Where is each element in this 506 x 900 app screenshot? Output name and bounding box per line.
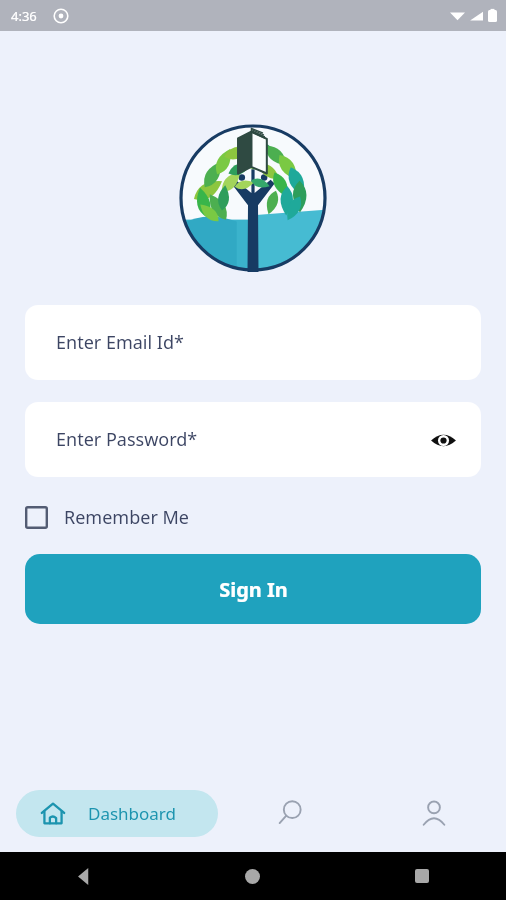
- button[interactable]: Home: [168, 852, 337, 900]
- staticText: Dashboard: [88, 802, 177, 825]
- button[interactable]: Search: [218, 774, 362, 852]
- staticText: Enter Password*: [56, 427, 198, 452]
- button[interactable]: Dashboard: [16, 790, 218, 837]
- button[interactable]: Show password: [425, 422, 461, 458]
- button[interactable]: Recents: [337, 852, 506, 900]
- button[interactable]: Enter Password*: [25, 402, 481, 477]
- staticText: Enter Email Id*: [56, 330, 184, 355]
- button[interactable]: Back: [0, 852, 168, 900]
- button[interactable]: Profile: [362, 774, 506, 852]
- button[interactable]: Sign In: [25, 554, 481, 624]
- button[interactable]: Remember Me: [25, 497, 189, 537]
- staticText: Sign In: [219, 576, 288, 603]
- staticText: Remember Me: [64, 505, 189, 530]
- staticText: 4:36: [11, 7, 37, 25]
- button[interactable]: Enter Email Id*: [25, 305, 481, 380]
